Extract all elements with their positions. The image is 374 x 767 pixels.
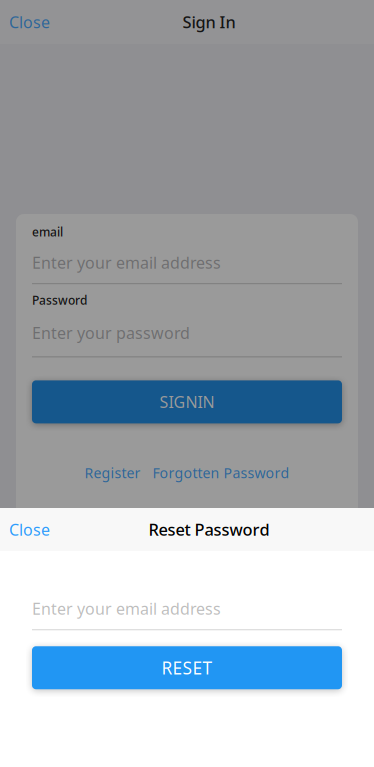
staticText: Enter your email address [32,252,221,273]
staticText: Forgotten Password [152,463,289,482]
button[interactable]: RESET [32,646,342,689]
staticText: Enter your email address [32,598,221,619]
button[interactable]: SIGNIN [32,380,342,423]
button[interactable]: Close [0,3,59,41]
staticText: Reset Password [148,519,269,540]
staticText: RESET [161,656,212,679]
staticText: SIGNIN [159,391,214,412]
staticText: Close [9,11,50,33]
button[interactable]: Register [84,463,140,482]
button[interactable]: Close [0,511,59,548]
staticText: Password [32,292,87,308]
staticText: Close [9,519,50,540]
staticText: email [32,224,63,240]
staticText: Enter your password [32,322,190,343]
staticText: Register [84,463,140,482]
staticText: Sign In [182,11,235,33]
button[interactable]: Forgotten Password [152,463,289,482]
